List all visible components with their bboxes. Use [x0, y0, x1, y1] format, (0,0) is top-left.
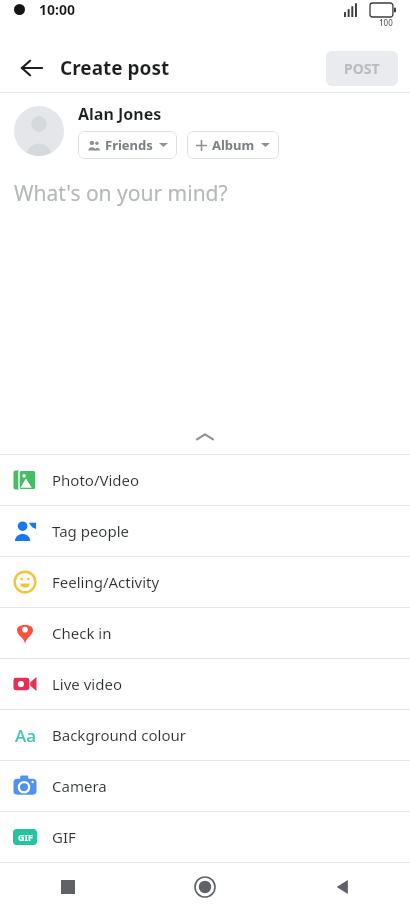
staticText: Album: [212, 136, 255, 154]
button[interactable]: Collapse: [0, 420, 410, 454]
button[interactable]: Aa: [0, 710, 410, 760]
staticText: Friends: [105, 136, 153, 154]
staticText: Check in: [52, 623, 112, 643]
staticText: Aa: [15, 724, 36, 747]
staticText: Background colour: [52, 725, 186, 745]
staticText: What's on your mind?: [14, 179, 228, 208]
button[interactable]: Profile picture: [14, 106, 64, 156]
staticText: Alan Jones: [78, 103, 162, 125]
staticText: Feeling/Activity: [52, 572, 160, 592]
button[interactable]: Home: [136, 863, 273, 911]
button[interactable]: GIF: [0, 812, 410, 862]
staticText: GIF: [52, 827, 76, 847]
button[interactable]: Live video: [0, 659, 410, 709]
button[interactable]: Album: [187, 131, 279, 159]
button[interactable]: Back: [273, 863, 410, 911]
button[interactable]: Recents: [0, 863, 136, 911]
staticText: 100: [379, 17, 393, 28]
button[interactable]: Check in: [0, 608, 410, 658]
staticText: Live video: [52, 674, 122, 694]
staticText: Tag people: [52, 521, 129, 541]
staticText: Camera: [52, 776, 107, 796]
button[interactable]: Tag people: [0, 506, 410, 556]
staticText: GIF: [18, 831, 33, 843]
button[interactable]: POST: [326, 51, 398, 86]
button[interactable]: Camera: [0, 761, 410, 811]
staticText: 10:00: [39, 0, 75, 19]
button[interactable]: Feeling/Activity: [0, 557, 410, 607]
staticText: Photo/Video: [52, 470, 140, 490]
button[interactable]: Back: [12, 48, 52, 88]
staticText: Create post: [60, 55, 170, 81]
button[interactable]: Friends: [78, 131, 177, 159]
staticText: POST: [344, 59, 380, 78]
button[interactable]: Photo/Video: [0, 455, 410, 505]
